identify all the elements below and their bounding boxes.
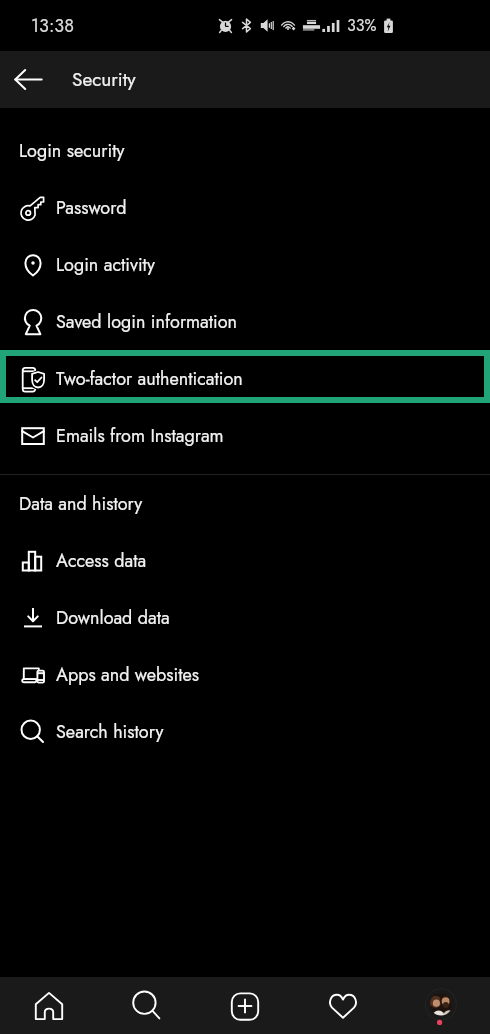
button[interactable]: Search: [98, 977, 196, 1034]
staticText: 13:38: [31, 13, 74, 39]
staticText: Security: [72, 66, 136, 93]
button[interactable]: Access data: [0, 532, 490, 589]
staticText: Saved login information: [56, 309, 238, 335]
staticText: 33%: [347, 14, 377, 37]
button[interactable]: Login activity: [0, 236, 490, 293]
staticText: Emails from Instagram: [56, 423, 224, 449]
staticText: Access data: [56, 548, 147, 574]
button[interactable]: Apps and websites: [0, 646, 490, 703]
staticText: Apps and websites: [56, 662, 200, 688]
button[interactable]: Download data: [0, 589, 490, 646]
staticText: Login activity: [56, 252, 155, 278]
staticText: Login security: [19, 138, 125, 164]
staticText: Data and history: [19, 491, 143, 517]
button[interactable]: Home: [0, 977, 98, 1034]
staticText: Password: [56, 195, 127, 221]
button[interactable]: Password: [0, 179, 490, 236]
staticText: Search history: [56, 719, 164, 745]
button[interactable]: Search history: [0, 703, 490, 760]
button[interactable]: Activity: [294, 977, 392, 1034]
button[interactable]: Back: [5, 56, 52, 103]
button[interactable]: Two-factor authentication: [0, 350, 490, 407]
staticText: Download data: [56, 605, 170, 631]
button[interactable]: Profile: [392, 977, 490, 1034]
staticText: Two-factor authentication: [56, 366, 243, 392]
button[interactable]: Saved login information: [0, 293, 490, 350]
button[interactable]: Emails from Instagram: [0, 407, 490, 464]
button[interactable]: Create: [196, 977, 294, 1034]
